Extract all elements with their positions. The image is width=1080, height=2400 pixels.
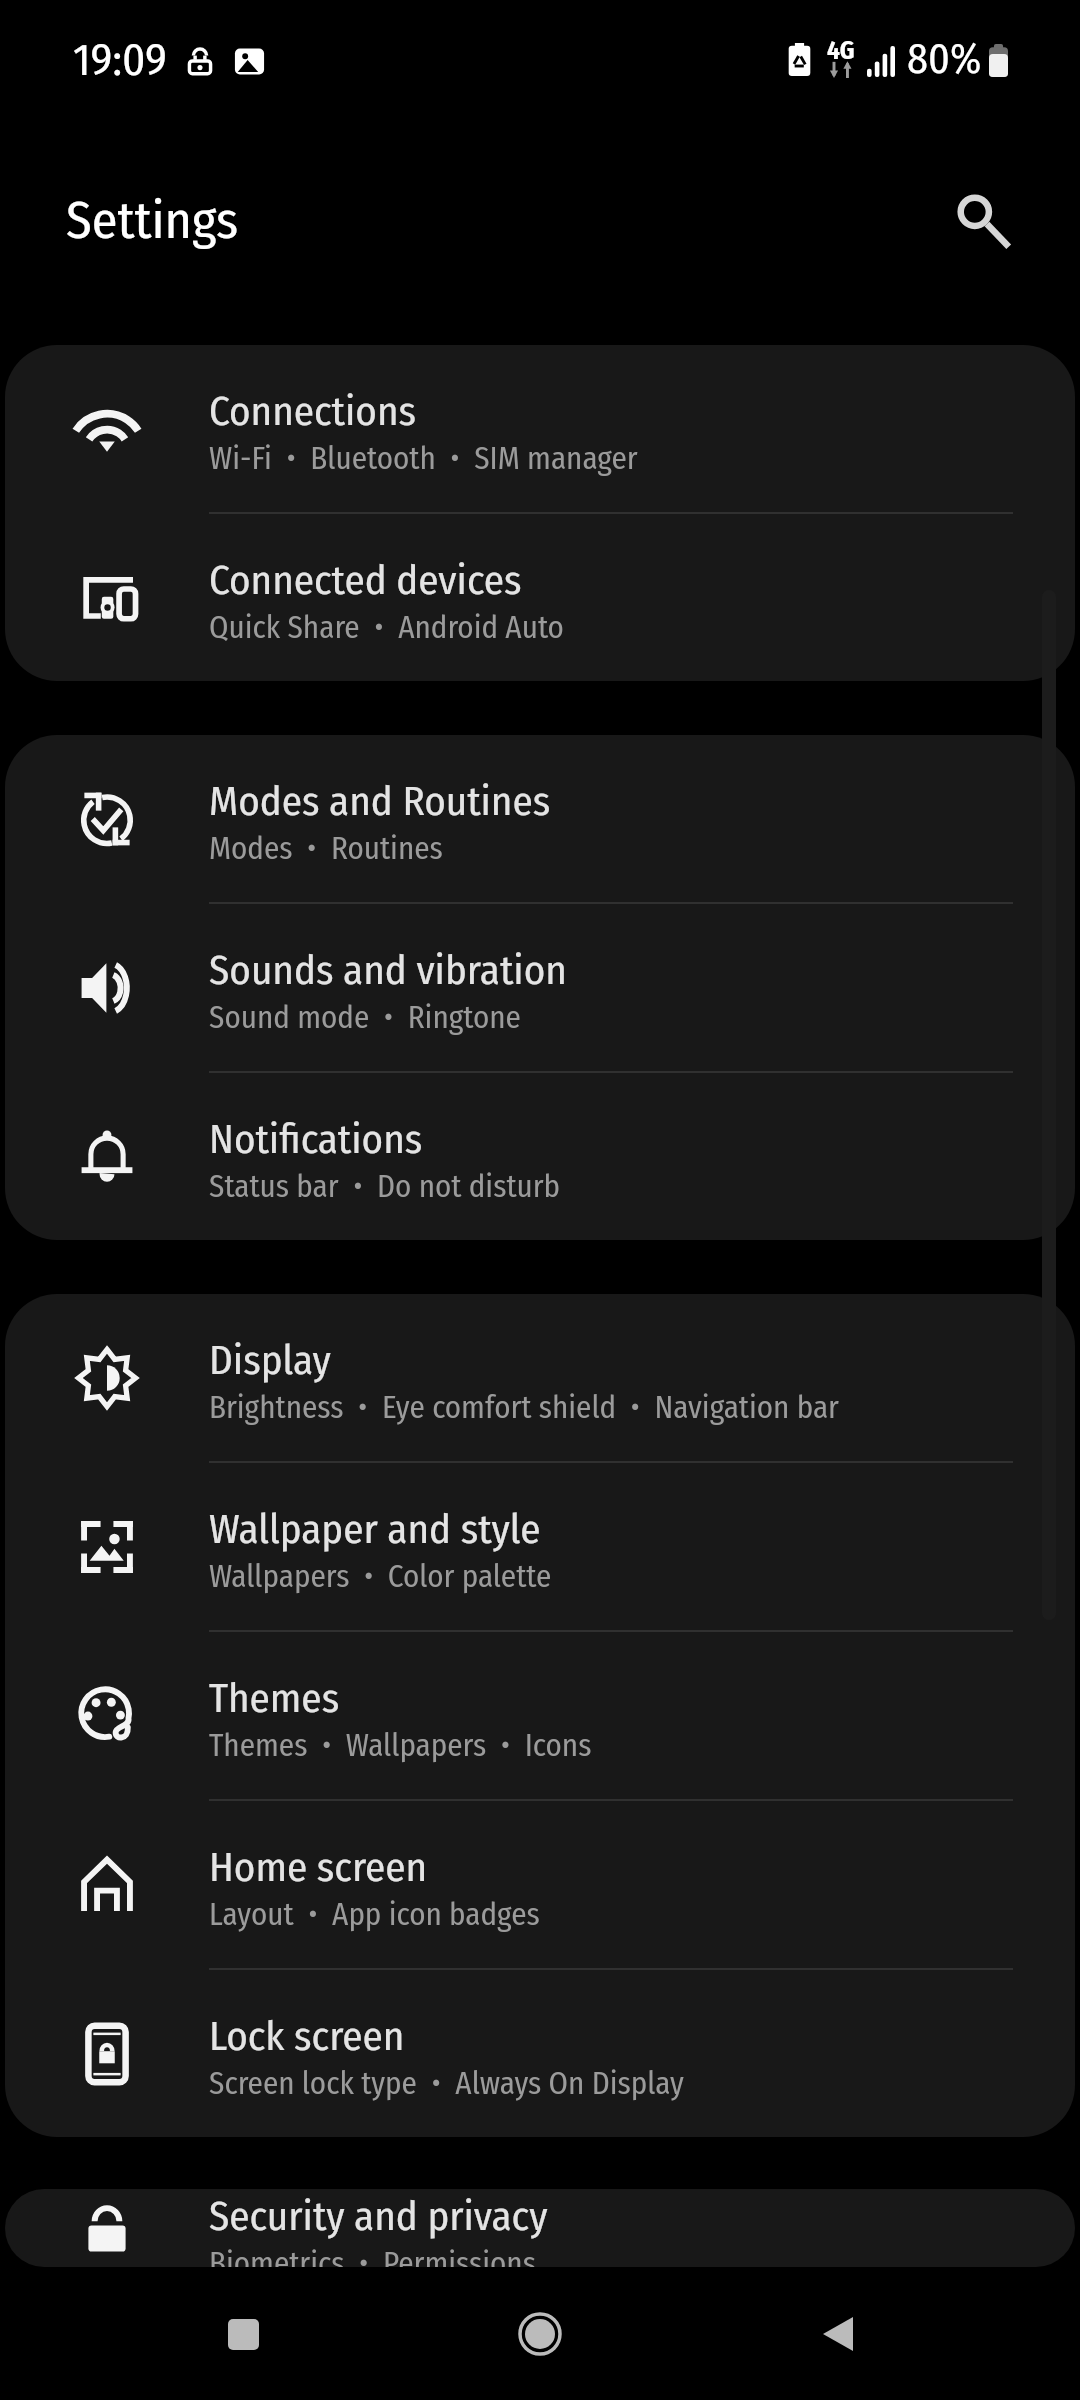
staticText: Home screen — [209, 1843, 428, 1892]
staticText: Screen lock type • Always On Display — [209, 2065, 684, 2102]
staticText: 19:09 — [73, 33, 167, 87]
staticText: Security and privacy — [209, 2192, 548, 2241]
button[interactable]: Modes and Routines — [5, 735, 1075, 902]
staticText: Lock screen — [209, 2012, 405, 2061]
staticText: Notifications — [209, 1115, 423, 1164]
staticText: Sounds and vibration — [209, 946, 567, 995]
button[interactable]: Themes — [5, 1632, 1075, 1799]
staticText: Modes • Routines — [209, 830, 443, 867]
staticText: Quick Share • Android Auto — [209, 609, 564, 646]
staticText: Wallpapers • Color palette — [209, 1558, 552, 1595]
staticText: Biometrics • Permissions — [209, 2245, 536, 2267]
staticText: 80% — [907, 34, 982, 84]
staticText: Layout • App icon badges — [209, 1896, 540, 1933]
button[interactable]: Home — [485, 2279, 595, 2389]
staticText: Wallpaper and style — [209, 1505, 541, 1554]
button[interactable]: Connections — [5, 345, 1075, 512]
staticText: Wi-Fi • Bluetooth • SIM manager — [209, 440, 638, 477]
button[interactable]: Display — [5, 1294, 1075, 1461]
staticText: Status bar • Do not disturb — [209, 1168, 561, 1205]
staticText: Connected devices — [209, 556, 522, 605]
button[interactable]: Sounds and vibration — [5, 904, 1075, 1071]
button[interactable]: Wallpaper and style — [5, 1463, 1075, 1630]
button[interactable]: Connected devices — [5, 514, 1075, 681]
staticText: Brightness • Eye comfort shield • Naviga… — [209, 1389, 839, 1426]
staticText: Themes — [209, 1674, 340, 1723]
button[interactable]: Security and privacy — [5, 2189, 1075, 2267]
staticText: Sound mode • Ringtone — [209, 999, 521, 1036]
staticText: 4G — [827, 36, 855, 66]
button[interactable]: Lock screen — [5, 1970, 1075, 2137]
staticText: Display — [209, 1336, 331, 1385]
button[interactable]: Notifications — [5, 1073, 1075, 1240]
staticText: Connections — [209, 387, 417, 436]
button[interactable]: Search — [932, 169, 1032, 269]
staticText: Themes • Wallpapers • Icons — [209, 1727, 592, 1764]
staticText: Modes and Routines — [209, 777, 551, 826]
button[interactable]: Home screen — [5, 1801, 1075, 1968]
staticText: Settings — [66, 189, 239, 251]
button[interactable]: Back — [783, 2279, 893, 2389]
button[interactable]: Recents — [188, 2279, 298, 2389]
